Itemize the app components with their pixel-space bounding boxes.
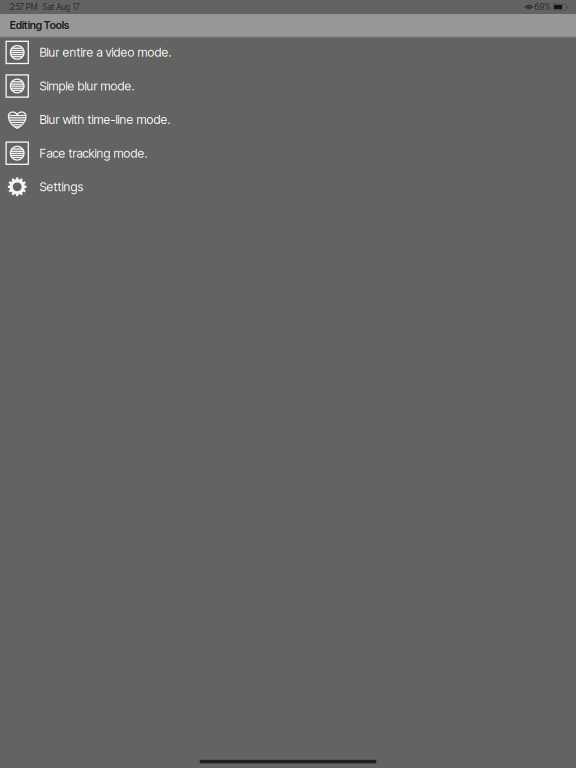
button[interactable]: Blur with time-line mode. <box>0 105 576 139</box>
button[interactable]: Blur entire a video mode. <box>0 38 576 72</box>
staticText: Settings <box>40 179 84 194</box>
staticText: Face tracking mode. <box>40 146 148 161</box>
button[interactable]: Editing Tools <box>0 14 576 36</box>
staticText: Blur with time-line mode. <box>40 112 171 127</box>
staticText: 2:57 PM <box>10 2 38 12</box>
button[interactable]: Simple blur mode. <box>0 72 576 105</box>
staticText: Simple blur mode. <box>40 79 135 93</box>
staticText: Editing Tools <box>10 18 69 31</box>
button[interactable]: Settings <box>0 172 576 206</box>
staticText: Blur entire a video mode. <box>40 45 172 60</box>
staticText: Sat Aug 17 <box>42 2 79 12</box>
staticText: 69% <box>534 2 550 12</box>
button[interactable]: Face tracking mode. <box>0 139 576 172</box>
